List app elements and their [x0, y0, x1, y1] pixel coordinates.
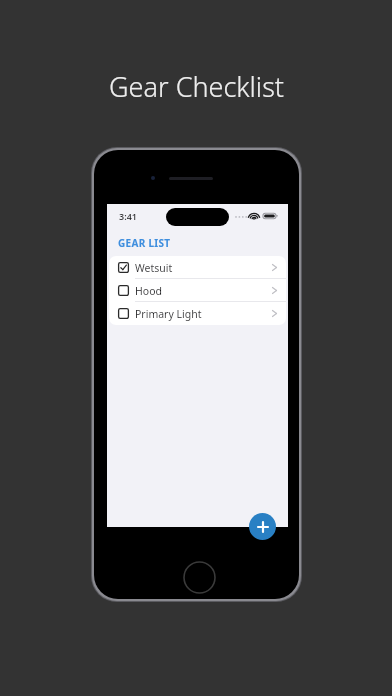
- staticText: Gear Checklist: [109, 68, 284, 105]
- button[interactable]: Add item: [249, 513, 276, 540]
- button[interactable]: Wetsuit: [109, 256, 286, 279]
- staticText: Hood: [135, 284, 162, 298]
- button[interactable]: Primary Light: [109, 302, 286, 325]
- button[interactable]: Home: [183, 561, 216, 594]
- staticText: 3:41: [119, 210, 137, 222]
- staticText: Primary Light: [135, 307, 202, 321]
- button[interactable]: Hood: [109, 279, 286, 302]
- staticText: GEAR LIST: [118, 236, 171, 250]
- staticText: Wetsuit: [135, 261, 173, 275]
